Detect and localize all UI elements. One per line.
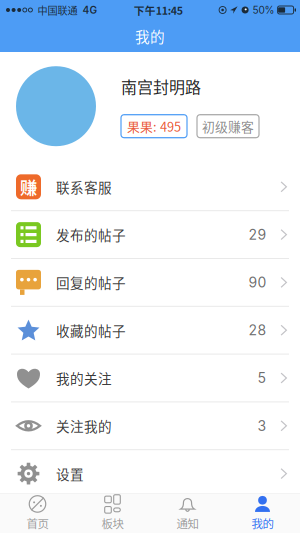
staticText: 关注我的 [56, 416, 112, 436]
staticText: 设置 [56, 464, 84, 483]
button[interactable]: 赚 [0, 163, 300, 211]
button[interactable]: 关注我的 [0, 402, 300, 450]
button[interactable]: 首页 [0, 494, 75, 533]
staticText: 南宫封明路 [121, 75, 201, 98]
staticText: 通知 [176, 515, 198, 531]
staticText: 90 [248, 274, 266, 291]
staticText: 4G [82, 4, 97, 16]
staticText: 收藏的帖子 [56, 320, 126, 340]
button[interactable]: 回复的帖子 [0, 259, 300, 307]
staticText: 我的 [251, 515, 273, 531]
staticText: 赚 [20, 174, 37, 199]
staticText: 3 [257, 417, 266, 434]
button[interactable]: 我的关注 [0, 355, 300, 402]
staticText: 5 [257, 369, 266, 386]
staticText: 中国联通 [37, 3, 77, 17]
staticText: 回复的帖子 [56, 273, 126, 292]
staticText: 我的 [135, 25, 165, 47]
staticText: 28 [248, 322, 266, 339]
button[interactable]: 发布的帖子 [0, 211, 300, 259]
button[interactable]: 我的 [225, 494, 300, 533]
staticText: 初级赚客 [202, 117, 254, 135]
staticText: 板块 [101, 515, 123, 531]
staticText: 50% [253, 4, 275, 16]
staticText: 果果: 495 [127, 117, 181, 135]
staticText: 我的关注 [56, 368, 112, 388]
staticText: 首页 [26, 515, 48, 531]
staticText: 联系客服 [56, 177, 112, 197]
button[interactable]: 收藏的帖子 [0, 307, 300, 355]
staticText: 29 [248, 226, 266, 243]
button[interactable]: 设置 [0, 450, 300, 498]
staticText: 下午11:45 [134, 2, 183, 18]
button[interactable]: 通知 [150, 494, 225, 533]
staticText: 发布的帖子 [56, 225, 126, 244]
button[interactable]: 板块 [75, 494, 150, 533]
